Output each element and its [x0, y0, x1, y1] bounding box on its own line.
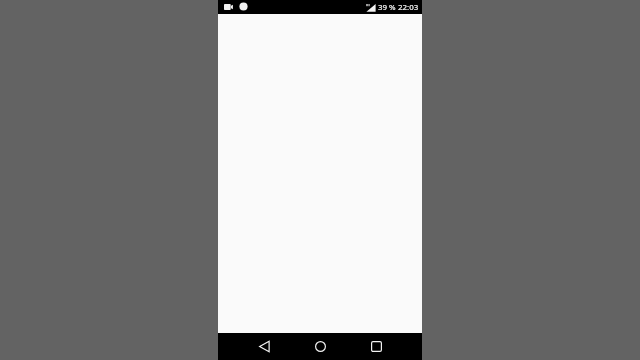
- button[interactable]: Recent apps: [359, 333, 393, 360]
- staticText: 22:03: [398, 2, 419, 13]
- staticText: 39 %: [378, 2, 396, 13]
- button[interactable]: Back: [247, 333, 281, 360]
- button[interactable]: Home: [303, 333, 337, 360]
